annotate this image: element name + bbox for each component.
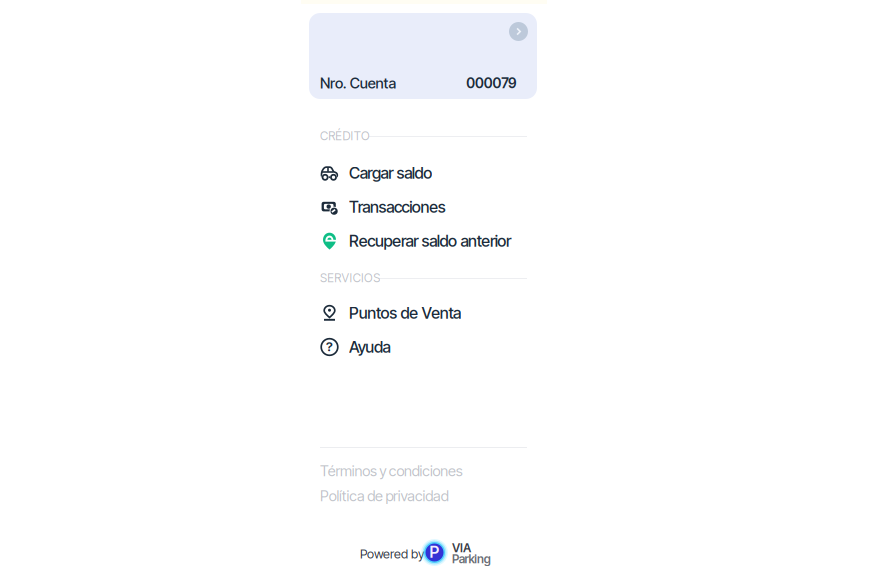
staticText: ? xyxy=(326,338,333,354)
staticText: Política de privacidad xyxy=(320,487,449,505)
staticText: Transacciones xyxy=(349,197,446,217)
button[interactable]: Recuperar saldo anterior xyxy=(320,224,527,258)
staticText: SERVICIOS xyxy=(320,271,380,285)
staticText: Recuperar saldo anterior xyxy=(349,231,511,251)
button[interactable]: Transacciones xyxy=(320,190,527,224)
staticText: Nro. Cuenta xyxy=(320,74,396,92)
staticText: Powered by xyxy=(360,546,424,562)
button[interactable]: Ver detalle de cuenta xyxy=(500,13,537,50)
staticText: VIA xyxy=(452,541,471,555)
button[interactable]: Términos y condiciones xyxy=(320,460,527,482)
staticText: Términos y condiciones xyxy=(320,462,463,480)
staticText: Ayuda xyxy=(349,337,391,357)
button[interactable]: Política de privacidad xyxy=(320,485,527,507)
staticText: Parking xyxy=(452,552,491,566)
staticText: 000079 xyxy=(466,75,517,92)
button[interactable]: Puntos de Venta xyxy=(320,296,527,330)
button[interactable]: ? xyxy=(320,330,527,364)
button[interactable]: Cargar saldo xyxy=(320,156,527,190)
staticText: CRÉDITO xyxy=(320,129,370,143)
staticText: P xyxy=(429,542,439,562)
staticText: Cargar saldo xyxy=(349,163,432,183)
staticText: Puntos de Venta xyxy=(349,303,461,323)
